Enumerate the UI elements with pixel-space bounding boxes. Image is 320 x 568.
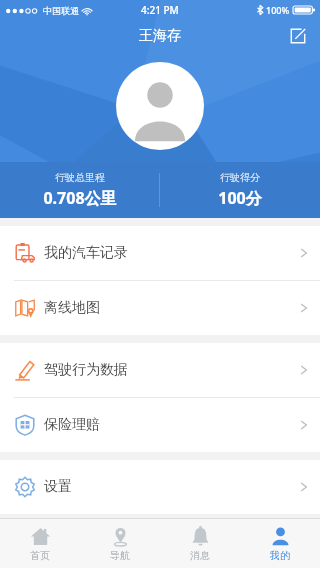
staticText: 中国联通: [43, 5, 79, 16]
button[interactable]: 保险理赔: [0, 398, 320, 452]
button[interactable]: 设置: [0, 460, 320, 514]
staticText: 导航: [110, 549, 130, 562]
button[interactable]: 我的汽车记录: [0, 226, 320, 280]
button[interactable]: Edit profile: [284, 22, 312, 50]
button[interactable]: 首页: [0, 519, 80, 568]
button[interactable]: 驾驶行为数据: [0, 343, 320, 397]
button[interactable]: 我的: [240, 519, 320, 568]
staticText: 我的: [270, 549, 290, 562]
button[interactable]: 导航: [80, 519, 160, 568]
staticText: 首页: [30, 549, 50, 562]
staticText: 保险理赔: [44, 416, 100, 434]
button[interactable]: 离线地图: [0, 281, 320, 335]
staticText: 100分: [218, 187, 262, 209]
staticText: 行驶总里程: [55, 171, 105, 184]
staticText: 驾驶行为数据: [44, 361, 128, 379]
staticText: 100%: [266, 4, 290, 16]
staticText: 4:21 PM: [141, 3, 179, 17]
staticText: 王海存: [139, 27, 181, 45]
staticText: 离线地图: [44, 299, 100, 317]
staticText: 消息: [190, 549, 210, 562]
staticText: 行驶得分: [220, 171, 260, 184]
staticText: 我的汽车记录: [44, 244, 128, 262]
staticText: 0.708公里: [43, 187, 117, 209]
button[interactable]: 消息: [160, 519, 240, 568]
staticText: 设置: [44, 478, 72, 496]
